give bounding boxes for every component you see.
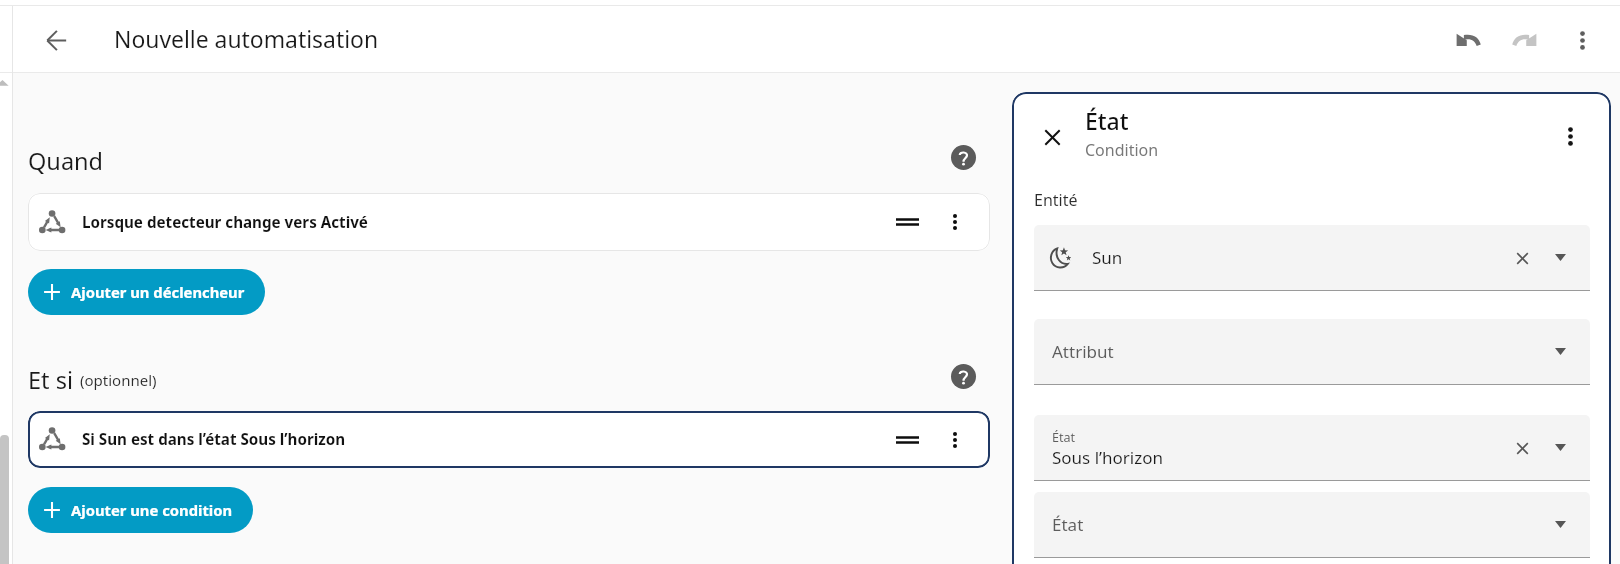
button[interactable]: Help [946, 140, 980, 174]
staticText: État [1052, 513, 1084, 536]
button[interactable]: More options [1560, 18, 1604, 62]
button[interactable]: Undo [1445, 16, 1489, 60]
button[interactable]: Si Sun est dans l’état Sous l’horizon [28, 411, 990, 468]
button[interactable]: Clear [1505, 431, 1539, 465]
button[interactable]: Close [1032, 117, 1072, 157]
button[interactable]: Attribut [1034, 319, 1590, 384]
staticText: Ajouter un déclencheur [71, 282, 245, 302]
button[interactable]: More options [936, 421, 974, 459]
button[interactable]: Reorder [888, 421, 926, 459]
staticText: Ajouter une condition [71, 500, 233, 520]
staticText: Condition [1085, 139, 1159, 161]
button[interactable]: More options [936, 203, 974, 241]
staticText: (optionnel) [80, 370, 157, 390]
staticText: Nouvelle automatisation [114, 24, 379, 55]
button[interactable]: Help [946, 359, 980, 393]
staticText: État [1052, 429, 1076, 446]
staticText: État [1085, 105, 1129, 136]
staticText: Sous l’horizon [1052, 446, 1164, 469]
staticText: Sun [1092, 246, 1123, 269]
button[interactable]: Redo [1503, 16, 1547, 60]
staticText: Quand [28, 145, 104, 177]
button[interactable]: Back [34, 18, 78, 62]
button[interactable]: État [1034, 415, 1590, 480]
staticText: Lorsque detecteur change vers Activé [82, 212, 368, 233]
button[interactable]: État [1034, 492, 1590, 557]
button[interactable]: More options [1550, 116, 1590, 156]
button[interactable]: Reorder [888, 203, 926, 241]
button[interactable]: Ajouter une condition [28, 487, 253, 533]
staticText: Si Sun est dans l’état Sous l’horizon [82, 429, 346, 450]
staticText: Attribut [1052, 340, 1114, 363]
staticText: Entité [1034, 189, 1078, 211]
button[interactable]: Clear [1505, 241, 1539, 275]
button[interactable]: Lorsque detecteur change vers Activé [28, 193, 990, 251]
button[interactable]: Ajouter un déclencheur [28, 269, 265, 315]
staticText: Et si [28, 364, 73, 396]
button[interactable]: Sun [1034, 225, 1590, 290]
